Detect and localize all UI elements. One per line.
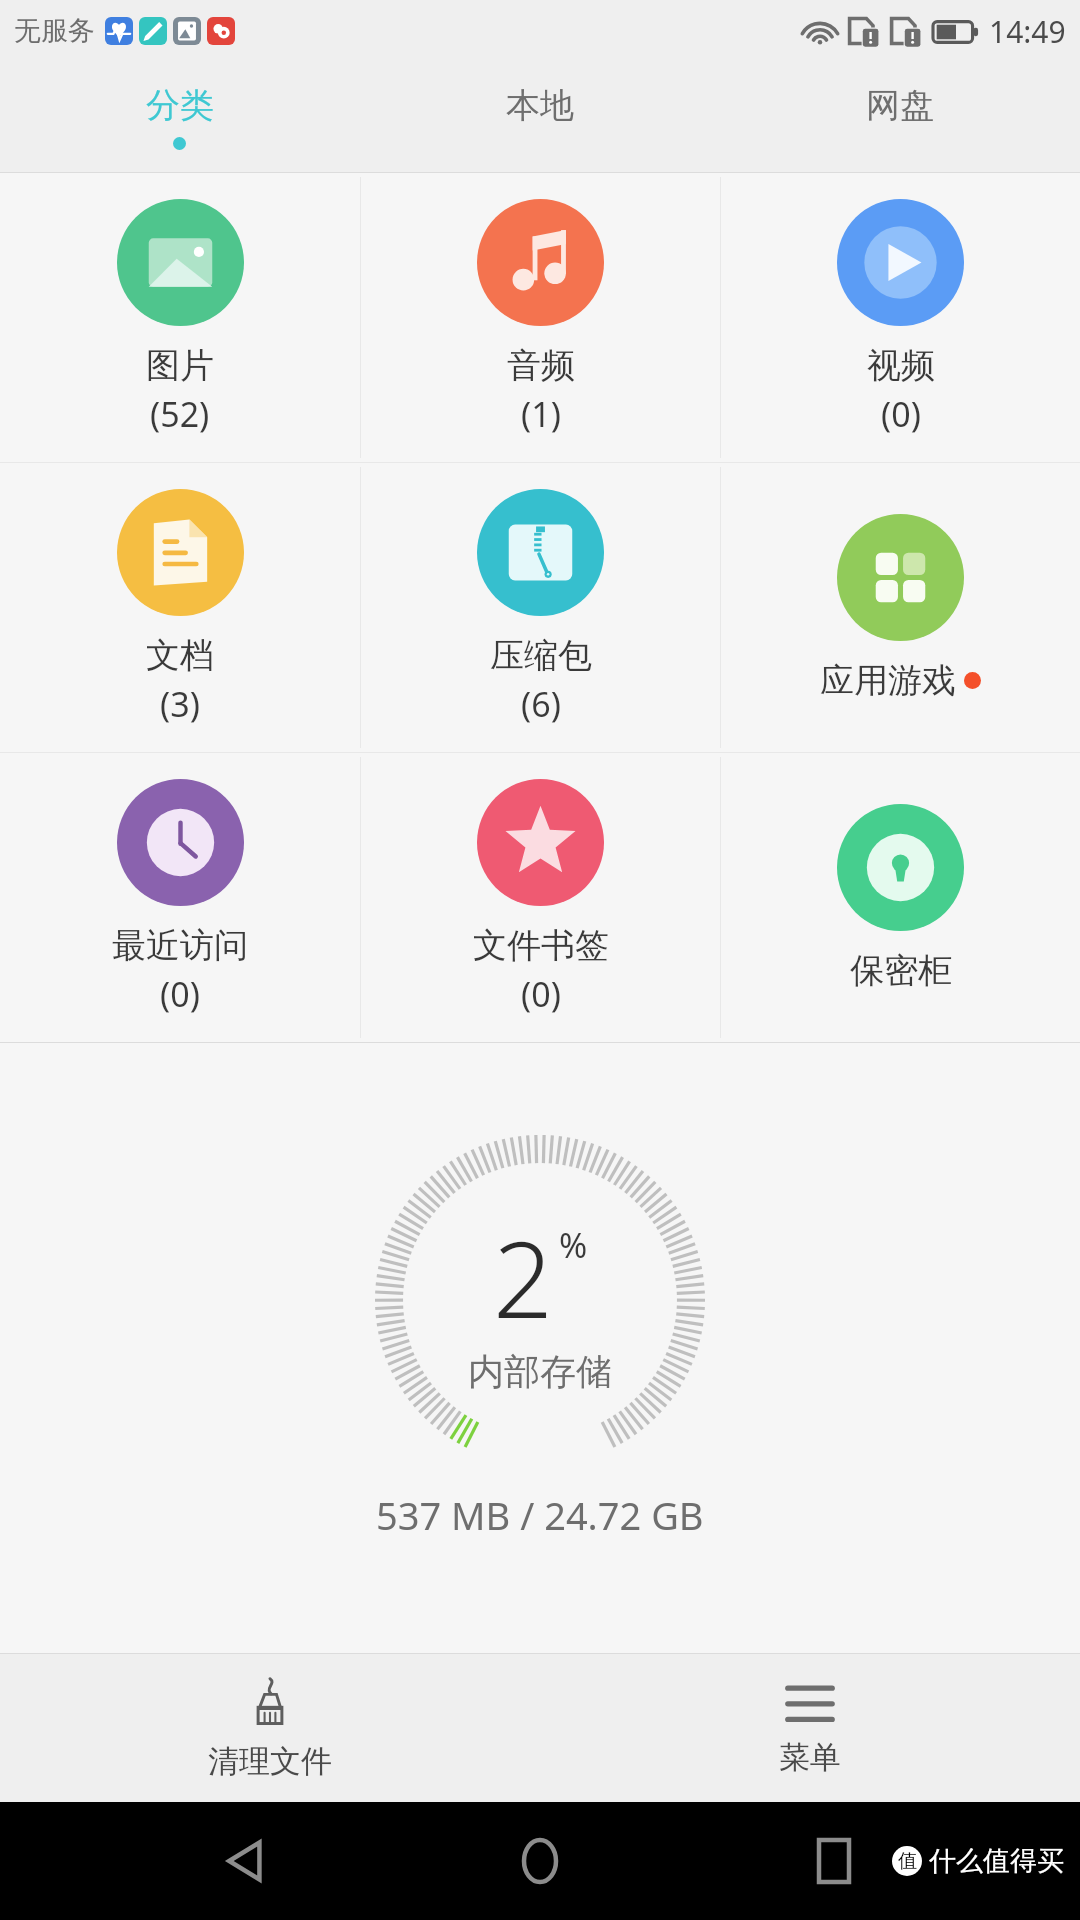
button[interactable]: 压缩包	[361, 463, 720, 752]
button[interactable]: 菜单	[540, 1654, 1080, 1802]
staticText: 网盘	[866, 84, 934, 127]
staticText: 分类	[146, 84, 214, 127]
button[interactable]: 音频	[361, 173, 720, 462]
staticText: 压缩包	[490, 634, 592, 677]
staticText: 应用游戏	[820, 659, 956, 702]
button[interactable]: 最近访问	[0, 753, 360, 1042]
staticText: (52)	[150, 391, 210, 437]
button[interactable]: Back	[198, 1813, 294, 1909]
button[interactable]: 文件书签	[361, 753, 720, 1042]
staticText: 文档	[146, 634, 214, 677]
button[interactable]: 分类	[0, 62, 360, 172]
staticText: 值	[898, 1849, 917, 1873]
button[interactable]: 保密柜	[721, 753, 1080, 1042]
staticText: (0)	[160, 971, 200, 1017]
staticText: (1)	[521, 391, 561, 437]
staticText: 清理文件	[208, 1742, 332, 1781]
staticText: 图片	[146, 344, 214, 387]
button[interactable]: 应用游戏	[721, 463, 1080, 752]
staticText: 本地	[506, 84, 574, 127]
staticText: (0)	[521, 971, 561, 1017]
staticText: 537 MB / 24.72 GB	[376, 1489, 704, 1541]
staticText: 视频	[867, 344, 935, 387]
button[interactable]: 本地	[360, 62, 720, 172]
button[interactable]: Home	[492, 1813, 588, 1909]
button[interactable]: 网盘	[720, 62, 1080, 172]
button[interactable]: 清理文件	[0, 1654, 540, 1802]
staticText: 什么值得买	[929, 1844, 1064, 1878]
staticText: %	[559, 1222, 588, 1268]
staticText: 文件书签	[473, 924, 609, 967]
button[interactable]: 图片	[0, 173, 360, 462]
button[interactable]: 视频	[721, 173, 1080, 462]
staticText: 无服务	[14, 14, 95, 48]
staticText: 最近访问	[112, 924, 248, 967]
button[interactable]: Recents	[786, 1813, 882, 1909]
staticText: 菜单	[779, 1738, 841, 1777]
staticText: 内部存储	[468, 1349, 612, 1394]
staticText: 音频	[507, 344, 575, 387]
staticText: (0)	[881, 391, 921, 437]
staticText: (6)	[521, 681, 561, 727]
staticText: 2	[493, 1206, 553, 1349]
staticText: 14:49	[989, 11, 1066, 52]
staticText: 保密柜	[850, 949, 952, 992]
button[interactable]: 文档	[0, 463, 360, 752]
staticText: (3)	[160, 681, 200, 727]
